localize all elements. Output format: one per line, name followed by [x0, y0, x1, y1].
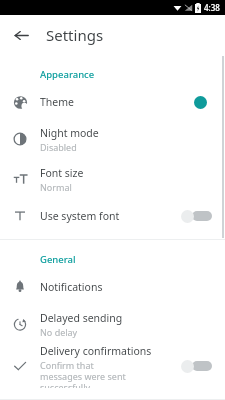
staticText: Confirm that messages were sent successf… [40, 359, 127, 388]
button[interactable]: Back [6, 20, 36, 50]
button[interactable]: Delivery confirmations [0, 344, 225, 388]
button[interactable]: Theme [0, 85, 225, 119]
staticText: Appearance [40, 68, 95, 81]
staticText: Notifications [40, 280, 103, 294]
staticText: Use system font [40, 209, 120, 223]
button[interactable]: Toggle [179, 355, 213, 377]
button[interactable]: Font size [0, 159, 225, 199]
button[interactable]: Toggle [179, 205, 213, 227]
button[interactable]: Night mode [0, 119, 225, 159]
button[interactable]: Use system font [0, 199, 225, 233]
button[interactable]: Delayed sending [0, 304, 225, 344]
staticText: Theme [40, 95, 74, 109]
staticText: Night mode [40, 126, 99, 140]
button[interactable]: Notifications [0, 270, 225, 304]
staticText: 4:38 [204, 2, 220, 13]
button[interactable]: Theme colour [187, 89, 213, 115]
staticText: Delivery confirmations [40, 344, 152, 358]
staticText: Delayed sending [40, 311, 123, 325]
staticText: Disabled [40, 141, 77, 153]
staticText: General [40, 253, 76, 266]
staticText: Settings [46, 25, 104, 45]
staticText: Font size [40, 166, 84, 180]
staticText: Normal [40, 181, 72, 193]
staticText: No delay [40, 326, 78, 338]
